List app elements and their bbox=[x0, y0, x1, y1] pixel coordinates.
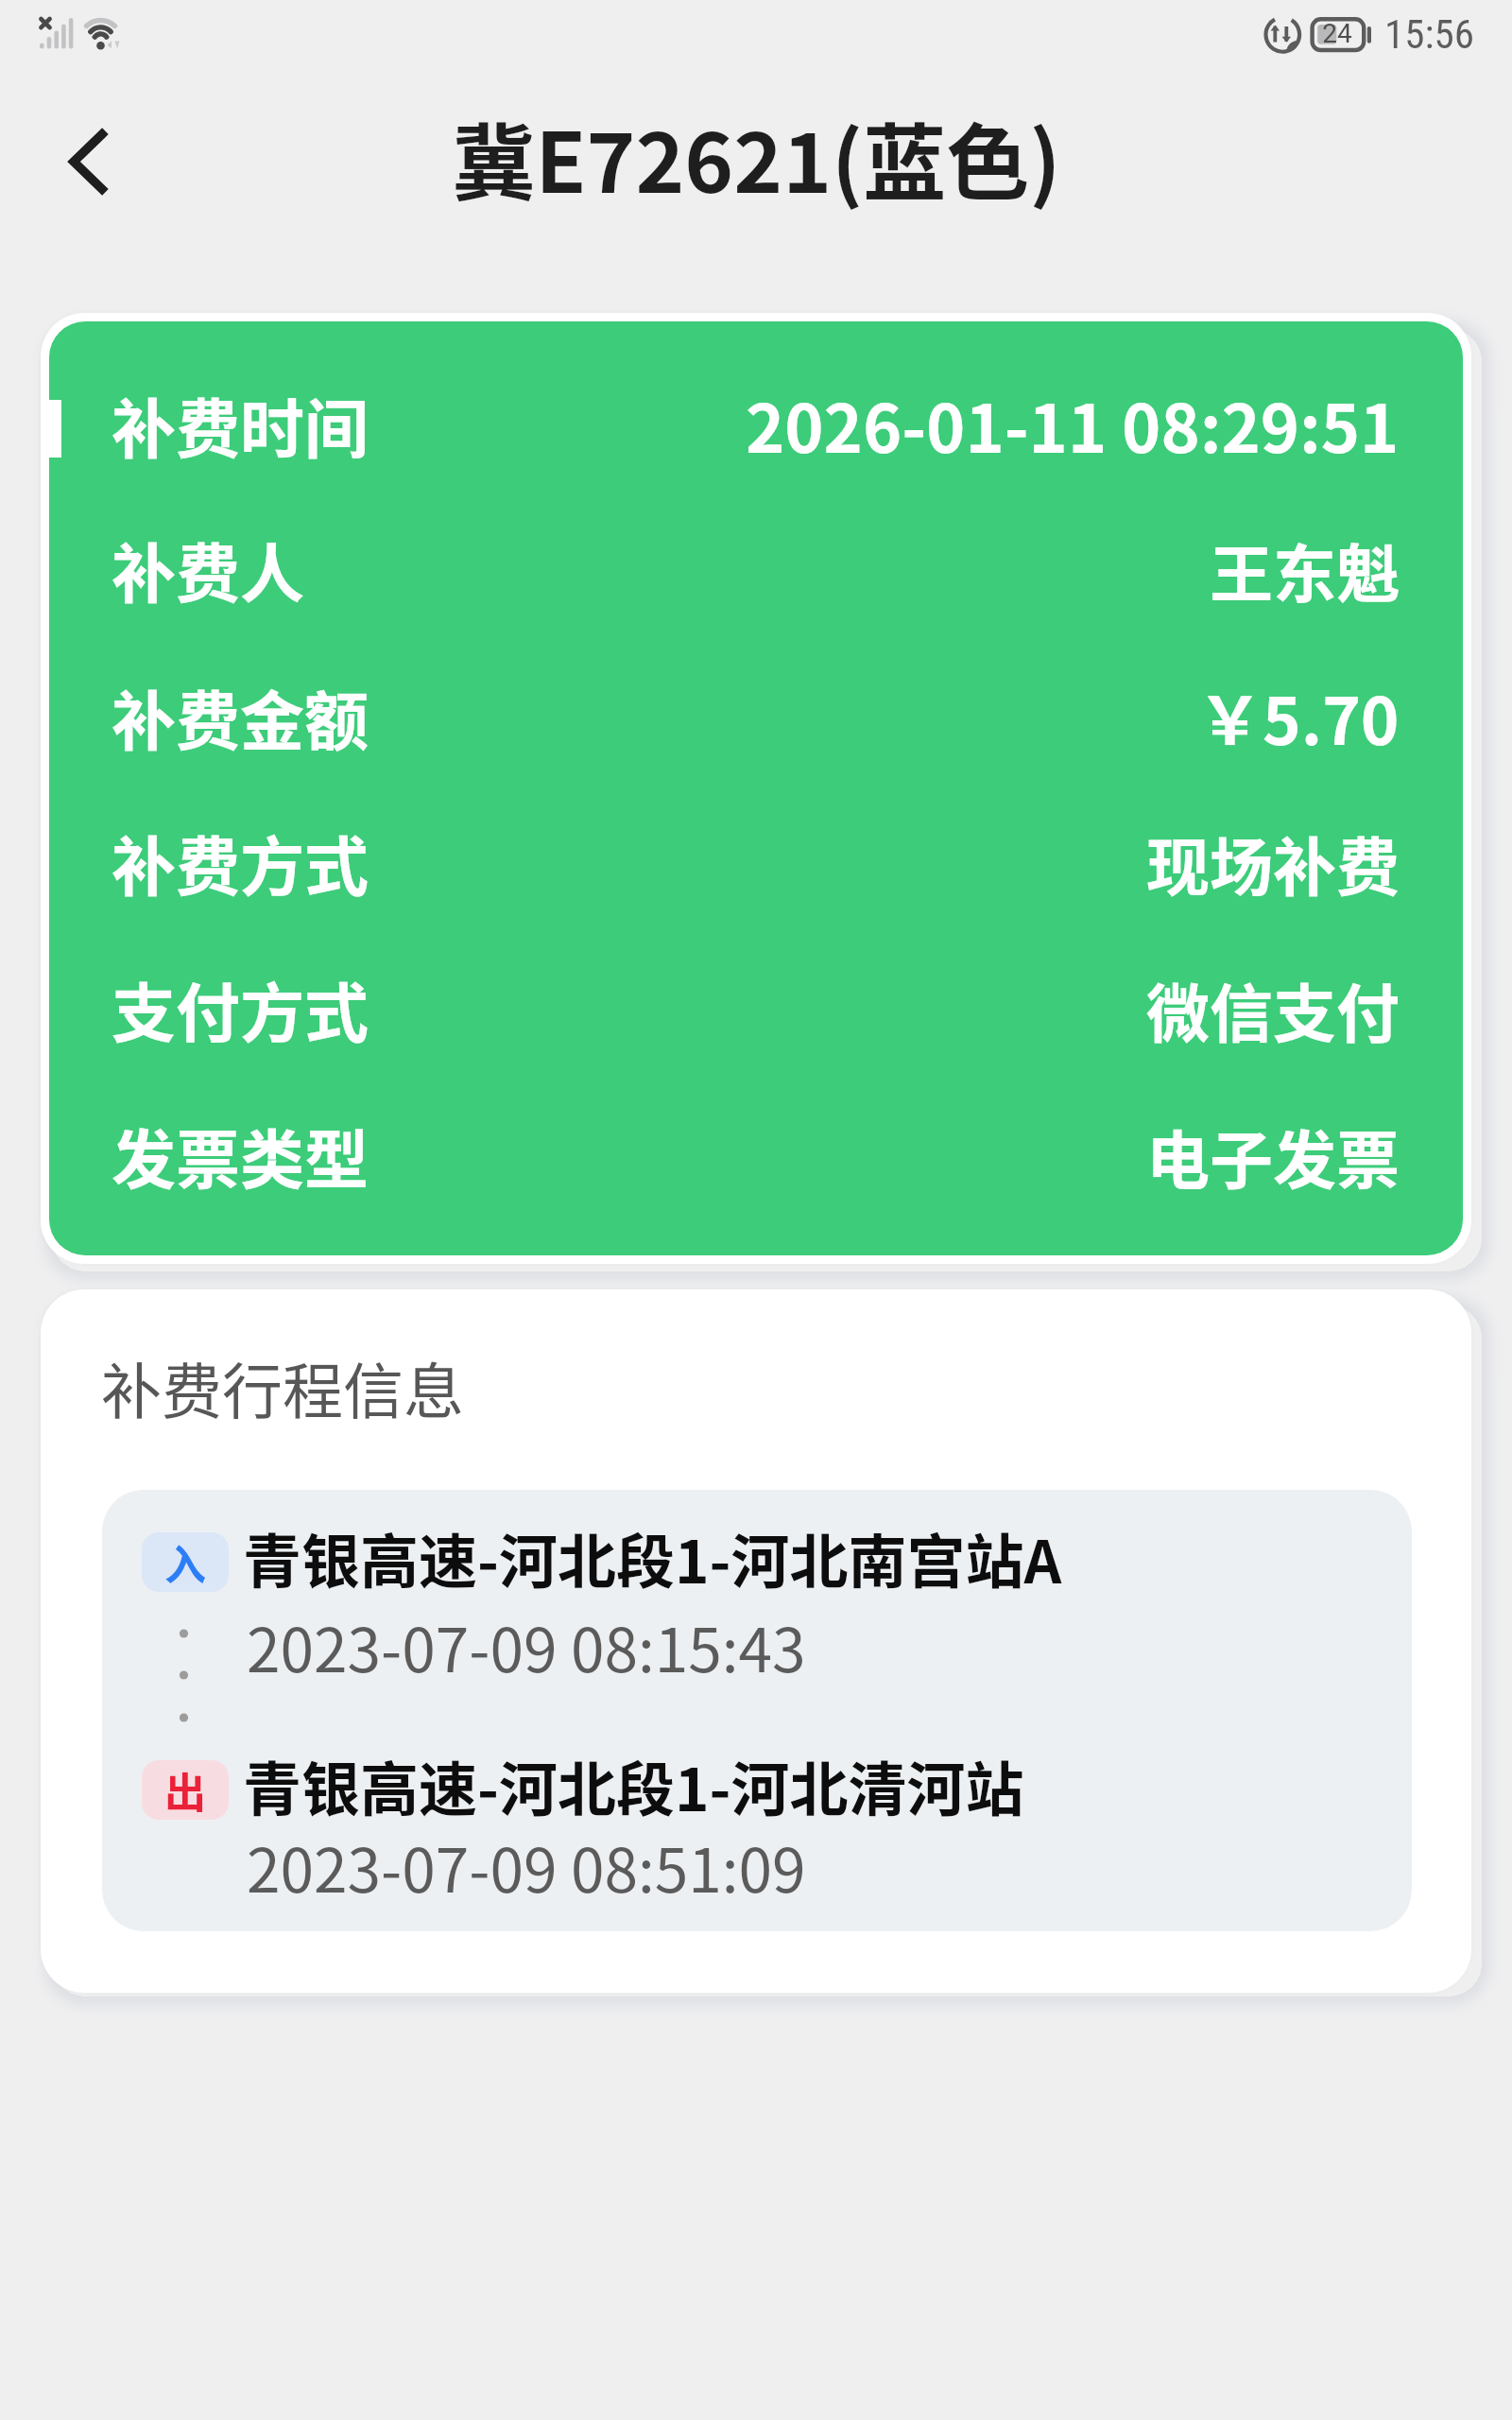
staticText: 冀E72621(蓝色) bbox=[452, 96, 1061, 216]
button[interactable]: 发票类型 bbox=[49, 1109, 1463, 1255]
staticText: 2023-07-09 08:51:09 bbox=[247, 1823, 806, 1910]
button[interactable]: 入 bbox=[102, 1490, 1412, 1931]
button[interactable]: 补费时间 bbox=[49, 376, 1463, 523]
staticText: 青银高速-河北段1-河北南宫站A bbox=[243, 1515, 1062, 1600]
staticText: 补费行程信息 bbox=[101, 1343, 464, 1431]
staticText: 补费金额 bbox=[112, 670, 369, 763]
staticText: ￥5.70 bbox=[1197, 669, 1400, 764]
staticText: 电子发票 bbox=[1146, 1110, 1400, 1201]
staticText: 发票类型 bbox=[112, 1109, 369, 1201]
button[interactable]: Back bbox=[31, 105, 145, 218]
button[interactable]: 支付方式 bbox=[49, 962, 1463, 1109]
staticText: 支付方式 bbox=[112, 962, 369, 1055]
staticText: 补费方式 bbox=[112, 816, 369, 908]
staticText: 现场补费 bbox=[1146, 817, 1400, 908]
staticText: 2023-07-09 08:15:43 bbox=[247, 1602, 806, 1690]
staticText: 15:56 bbox=[1384, 10, 1474, 58]
staticText: 补费时间 bbox=[112, 378, 369, 471]
button[interactable]: 补费金额 bbox=[49, 669, 1463, 816]
button[interactable]: 补费人 bbox=[49, 523, 1463, 669]
staticText: 出 bbox=[164, 1760, 206, 1820]
staticText: 补费人 bbox=[112, 523, 305, 615]
staticText: 王东魁 bbox=[1210, 524, 1400, 615]
staticText: 24 bbox=[1318, 18, 1356, 49]
staticText: 青银高速-河北段1-河北清河站 bbox=[243, 1743, 1024, 1828]
staticText: 入 bbox=[164, 1532, 206, 1592]
button[interactable]: 补费方式 bbox=[49, 816, 1463, 962]
staticText: 微信支付 bbox=[1146, 963, 1400, 1055]
staticText: 2026-01-11 08:29:51 bbox=[746, 376, 1400, 472]
